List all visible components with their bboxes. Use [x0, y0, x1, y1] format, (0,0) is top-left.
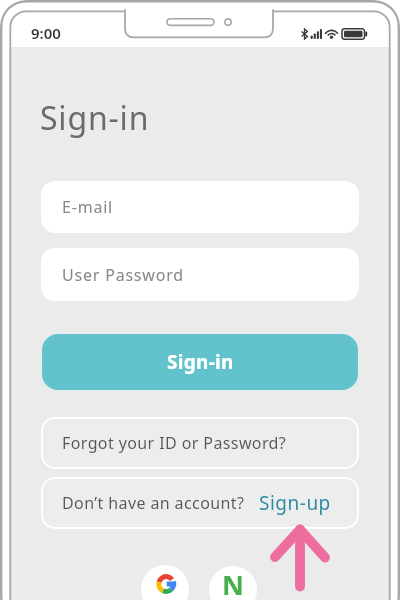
button[interactable]: N	[209, 566, 257, 600]
staticText: 9:00	[31, 23, 61, 43]
staticText: Sign-in	[167, 349, 234, 375]
button[interactable]: Sign-in	[42, 334, 358, 390]
button[interactable]: Sign-up	[259, 490, 331, 516]
staticText: Sign-in	[40, 96, 150, 140]
staticText: User Password	[62, 264, 184, 286]
button[interactable]: E-mail	[41, 181, 359, 233]
button[interactable]: Don’t have an account?	[41, 477, 359, 529]
button[interactable]	[141, 565, 189, 600]
staticText: Forgot your ID or Password?	[62, 432, 287, 454]
staticText: Don’t have an account?	[62, 492, 245, 514]
button[interactable]: Forgot your ID or Password?	[41, 417, 359, 469]
staticText: N	[222, 566, 244, 600]
button[interactable]: User Password	[41, 248, 359, 301]
staticText: E-mail	[62, 196, 114, 218]
